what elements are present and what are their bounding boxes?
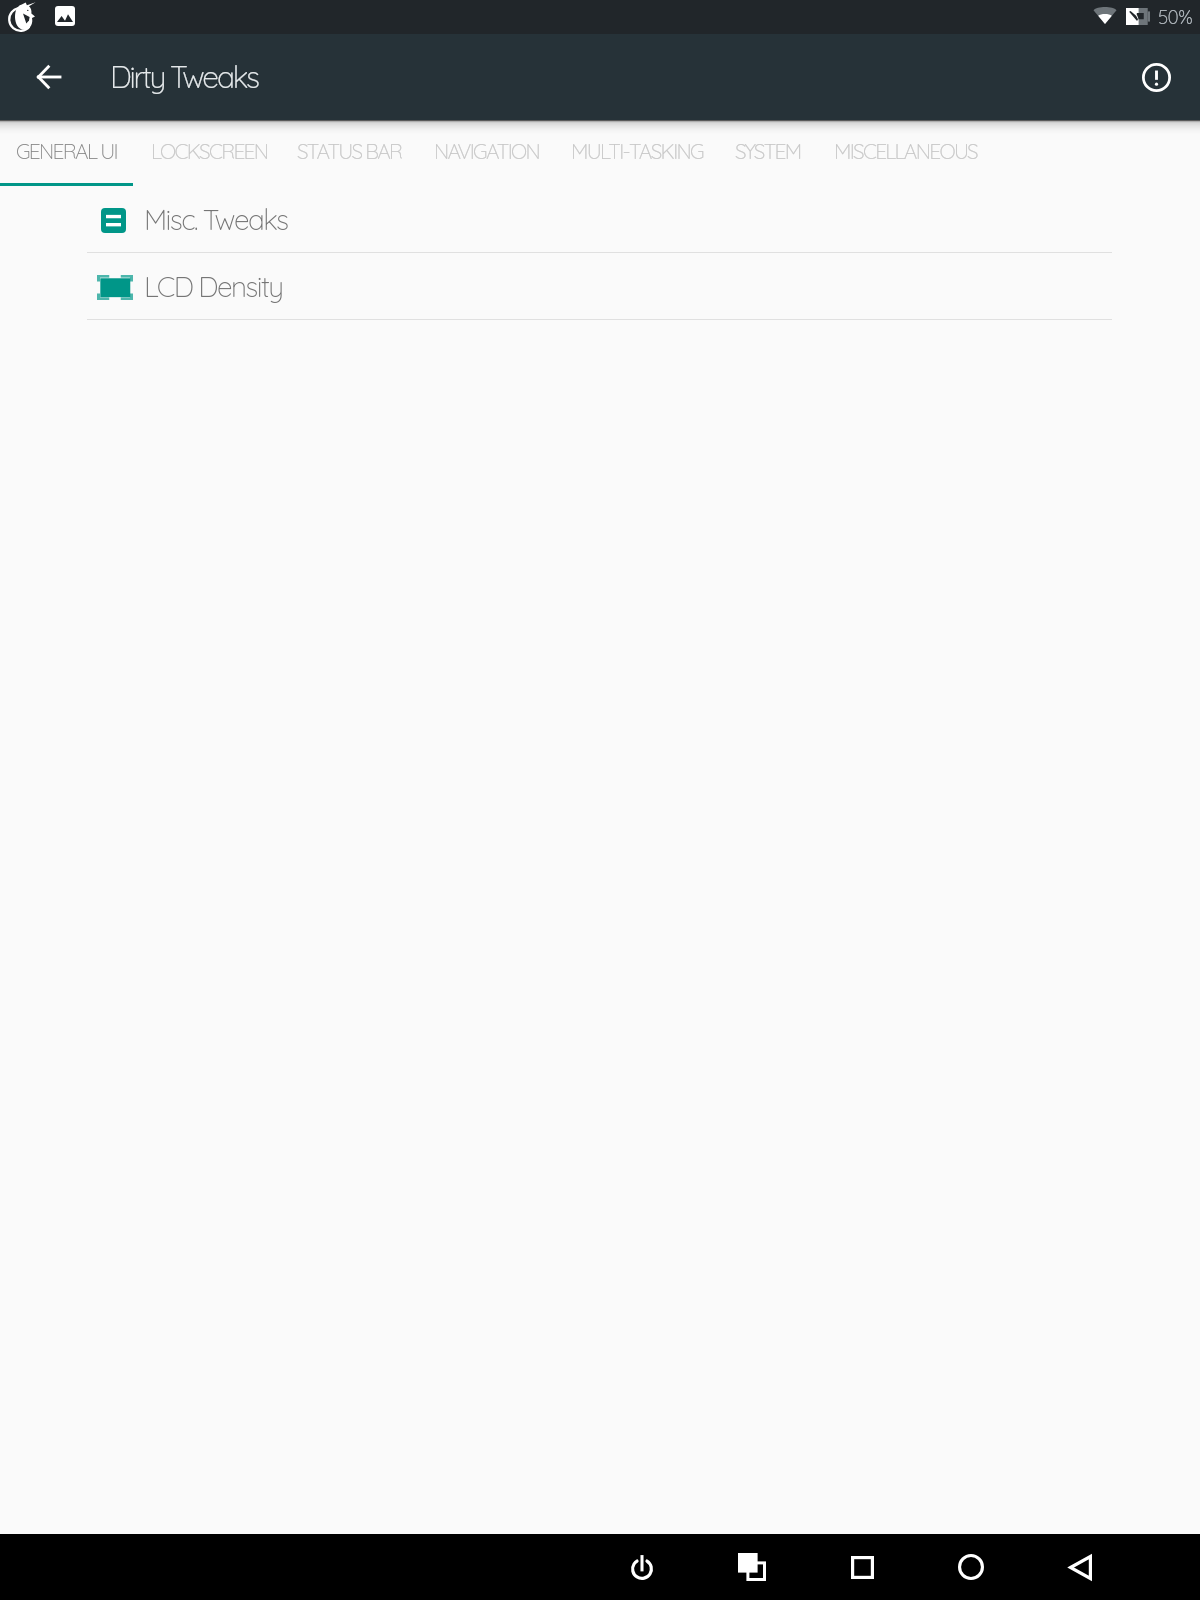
button[interactable]: STATUS BAR <box>283 120 416 183</box>
button[interactable]: MULTI-TASKING <box>570 120 703 183</box>
staticText: 50% <box>1158 5 1193 29</box>
staticText: Dirty Tweaks <box>110 58 258 96</box>
button[interactable]: Information <box>1132 53 1180 101</box>
staticText: NAVIGATION <box>434 138 539 164</box>
button[interactable]: Power <box>609 1534 675 1600</box>
button[interactable]: Back <box>25 53 73 101</box>
staticText: GENERAL UI <box>16 138 117 164</box>
staticText: MISCELLANEOUS <box>834 138 977 164</box>
staticText: Misc. Tweaks <box>144 202 288 237</box>
staticText: MULTI-TASKING <box>571 138 703 164</box>
button[interactable]: NAVIGATION <box>420 120 553 183</box>
button[interactable]: LCD Density <box>0 253 1200 320</box>
button[interactable]: GENERAL UI <box>0 120 133 183</box>
button[interactable]: Recents <box>829 1534 895 1600</box>
staticText: LOCKSCREEN <box>151 138 268 164</box>
button[interactable]: Split screen <box>719 1534 785 1600</box>
button[interactable]: LOCKSCREEN <box>140 120 279 183</box>
staticText: SYSTEM <box>735 138 801 164</box>
button[interactable]: Home <box>938 1534 1004 1600</box>
button[interactable]: SYSTEM <box>701 120 834 183</box>
staticText: STATUS BAR <box>297 138 402 164</box>
staticText: LCD Density <box>144 269 283 304</box>
button[interactable]: Misc. Tweaks <box>0 186 1200 253</box>
button[interactable]: MISCELLANEOUS <box>827 120 984 183</box>
button[interactable]: Back <box>1047 1534 1113 1600</box>
